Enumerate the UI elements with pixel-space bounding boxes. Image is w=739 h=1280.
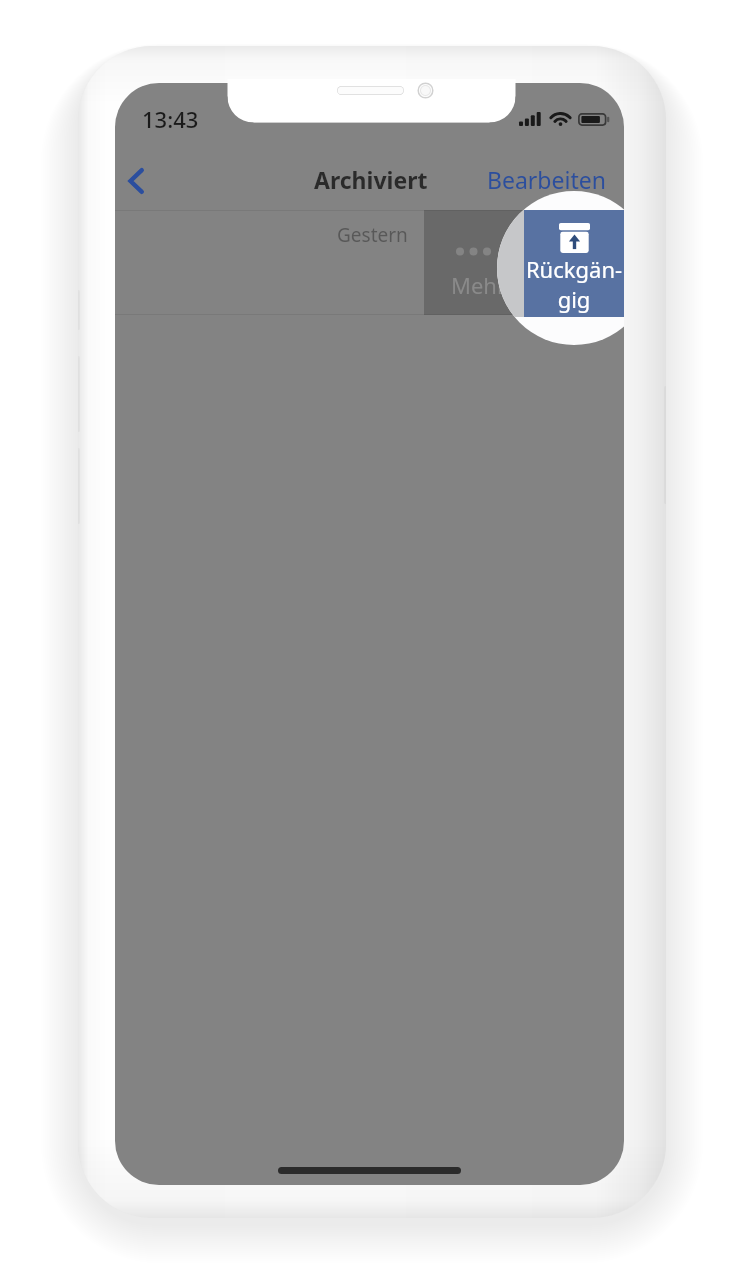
button[interactable]: Rückgängig: [524, 210, 624, 315]
button[interactable]: Zurück: [115, 149, 164, 213]
button[interactable]: Bearbeiten: [477, 150, 624, 209]
staticText: Archiviert: [314, 164, 428, 195]
staticText: Gestern: [337, 222, 408, 248]
staticText: 13:43: [142, 104, 199, 134]
button[interactable]: Mehr: [424, 210, 524, 315]
staticText: Mehr: [451, 270, 507, 300]
staticText: Bearbeiten: [487, 164, 606, 195]
button[interactable]: Gestern: [115, 210, 424, 315]
staticText: Rückgän- gig: [524, 254, 624, 314]
